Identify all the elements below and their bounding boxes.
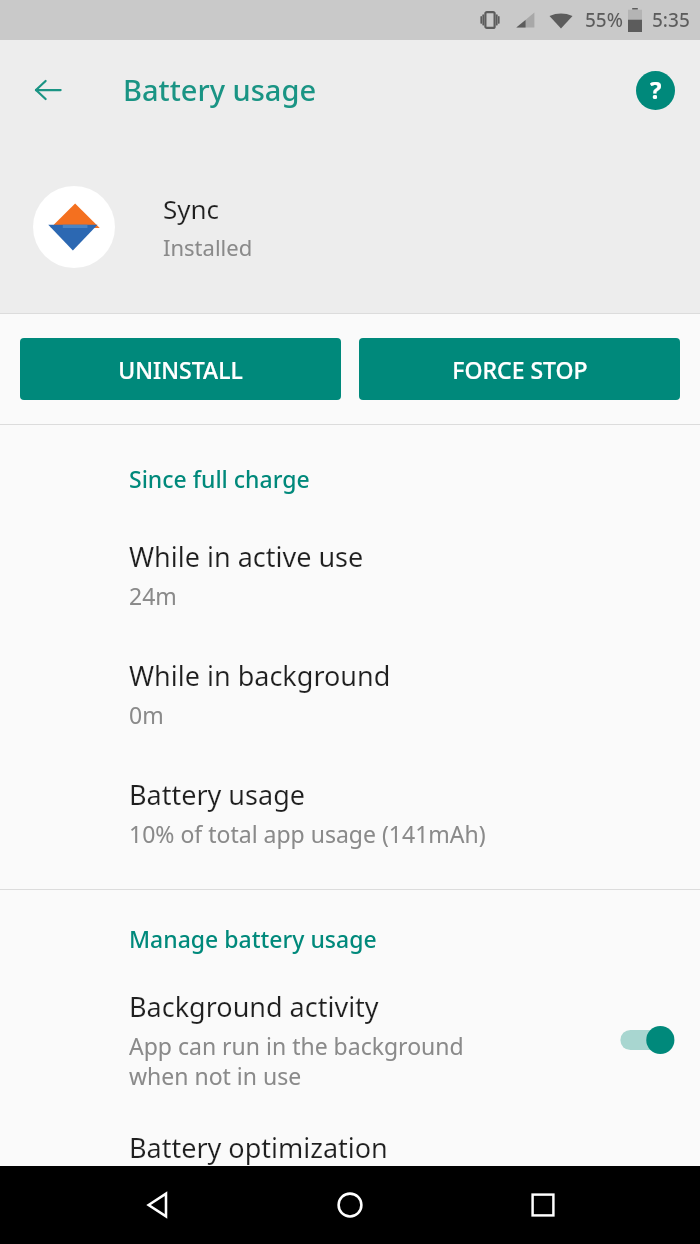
staticText: Installed [163,232,253,262]
staticText: Battery usage [129,776,305,813]
staticText: UNINSTALL [118,354,243,385]
staticText: While in background [129,657,391,694]
button[interactable]: Background activity toggle [614,1018,678,1062]
button[interactable]: While in active use [0,528,700,621]
button[interactable]: Recent apps [507,1169,579,1241]
button[interactable]: Help [624,59,686,121]
staticText: FORCE STOP [452,354,588,385]
button[interactable]: Back [14,56,82,124]
staticText: Battery usage [123,70,317,109]
staticText: 0m [129,699,164,730]
staticText: 10% of total app usage (141mAh) [129,818,486,849]
button[interactable]: UNINSTALL [20,338,341,400]
staticText: 55% [585,7,623,33]
button[interactable]: Battery usage [0,766,700,859]
button[interactable]: FORCE STOP [359,338,680,400]
staticText: 5:35 [652,7,690,33]
staticText: Background activity [129,988,379,1025]
staticText: ? [650,73,662,106]
button[interactable]: Home [314,1169,386,1241]
staticText: While in active use [129,538,364,575]
button[interactable]: While in background [0,647,700,740]
staticText: Manage battery usage [129,923,377,954]
staticText: Sync [163,191,220,226]
staticText: Since full charge [129,463,310,494]
button[interactable]: Background activity [0,988,700,1091]
staticText: Battery optimization [129,1129,388,1166]
staticText: App can run in the background when not i… [129,1030,464,1091]
staticText: 24m [129,580,177,611]
button[interactable]: Back [121,1169,193,1241]
